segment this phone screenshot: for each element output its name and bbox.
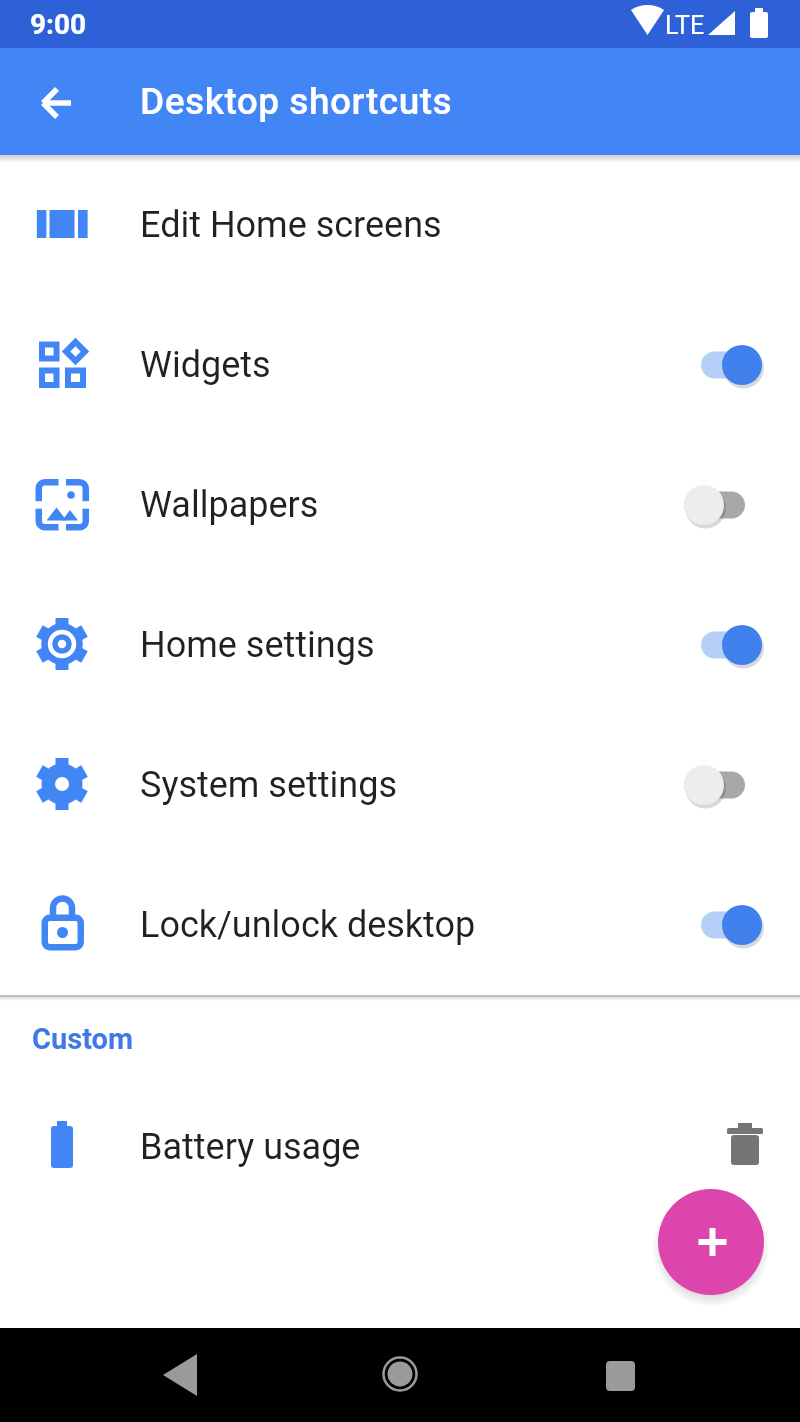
button[interactable]: Wallpapers bbox=[0, 435, 800, 575]
button[interactable] bbox=[658, 1189, 764, 1295]
button[interactable] bbox=[675, 335, 779, 395]
staticText: LTE bbox=[665, 11, 705, 40]
staticText: Battery usage bbox=[140, 1126, 361, 1168]
staticText: Custom bbox=[32, 1022, 134, 1056]
button[interactable]: Home settings bbox=[0, 575, 800, 715]
button[interactable]: Battery usage bbox=[0, 1077, 800, 1217]
staticText: System settings bbox=[140, 764, 398, 806]
button[interactable] bbox=[675, 615, 779, 675]
button[interactable] bbox=[533, 1328, 800, 1422]
button[interactable] bbox=[26, 71, 88, 133]
staticText: Edit Home screens bbox=[140, 204, 442, 246]
button[interactable]: Widgets bbox=[0, 295, 800, 435]
button[interactable] bbox=[0, 1328, 266, 1422]
button[interactable]: Edit Home screens bbox=[0, 155, 800, 295]
staticText: Home settings bbox=[140, 624, 375, 666]
staticText: Wallpapers bbox=[140, 484, 319, 526]
button[interactable]: Lock/unlock desktop bbox=[0, 855, 800, 995]
staticText: Lock/unlock desktop bbox=[140, 904, 476, 946]
button[interactable] bbox=[266, 1328, 533, 1422]
staticText: Widgets bbox=[140, 344, 271, 386]
button[interactable] bbox=[675, 755, 779, 815]
button[interactable] bbox=[675, 475, 779, 535]
staticText: 9:00 bbox=[30, 8, 87, 41]
button[interactable] bbox=[713, 1115, 777, 1179]
staticText: Desktop shortcuts bbox=[140, 80, 453, 123]
button[interactable] bbox=[675, 895, 779, 955]
button[interactable]: System settings bbox=[0, 715, 800, 855]
